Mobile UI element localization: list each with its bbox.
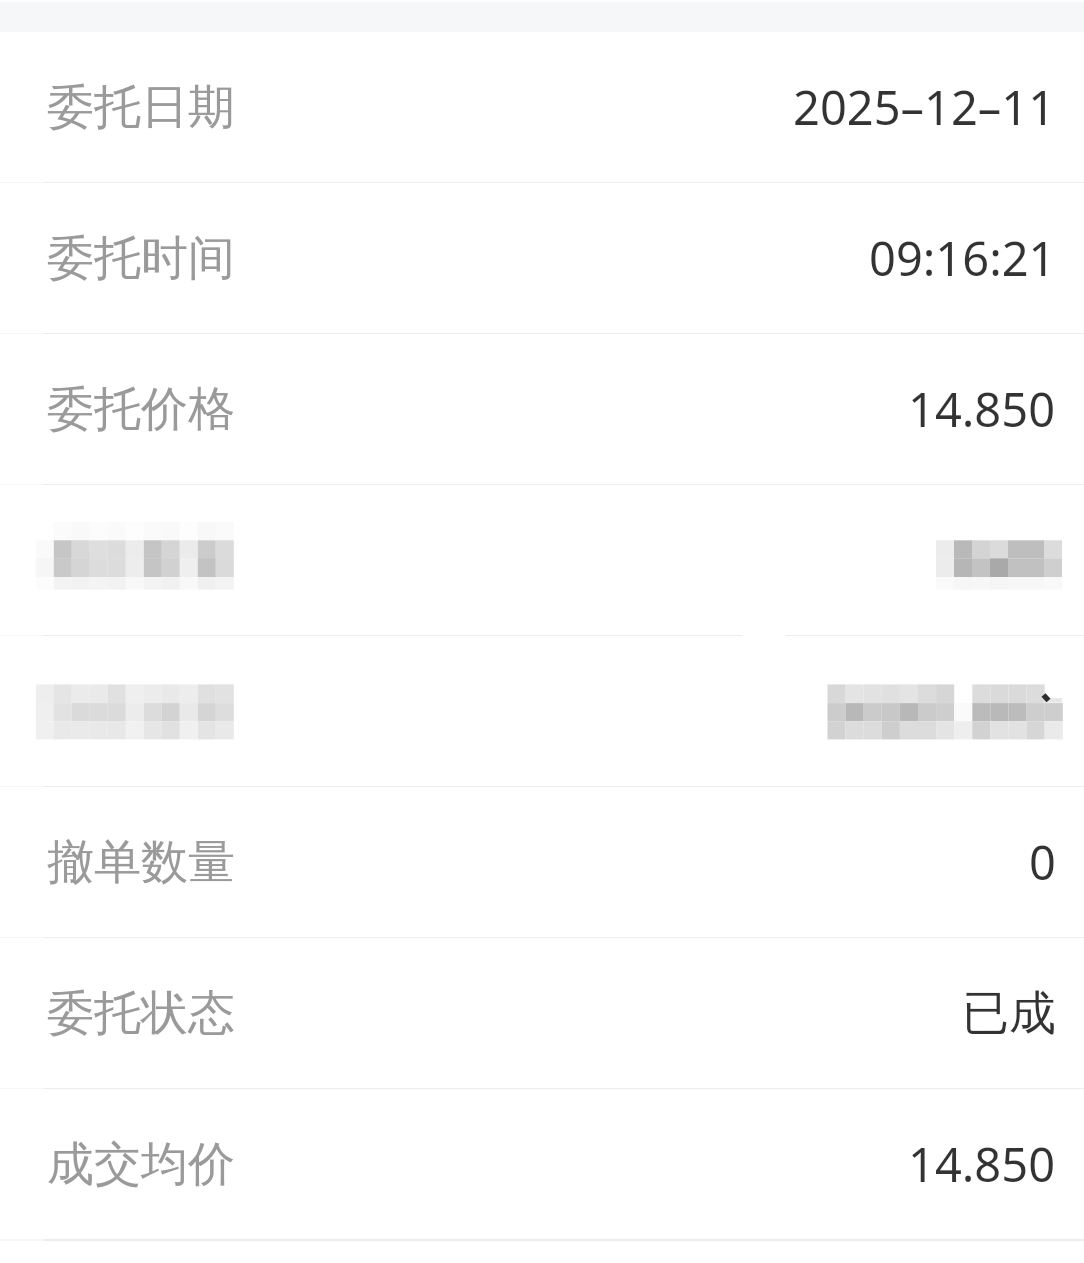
staticText: 委托价格	[47, 380, 235, 439]
button[interactable]: 委托价格	[0, 334, 1084, 485]
staticText: 已成	[962, 984, 1056, 1043]
staticText: 委托时间	[47, 229, 235, 288]
staticText: 成交均价	[47, 1135, 235, 1194]
staticText: 14.850	[908, 377, 1056, 441]
staticText: 委托状态	[47, 984, 235, 1043]
staticText: 09:16:21	[869, 226, 1056, 290]
staticText: 14.850	[908, 1132, 1056, 1196]
button[interactable]: 委托状态	[0, 938, 1084, 1089]
staticText: 2025–12–11	[793, 75, 1056, 139]
staticText: 委托日期	[47, 78, 235, 137]
button[interactable]: 撤单数量	[0, 787, 1084, 938]
button[interactable]: 委托时间	[0, 183, 1084, 334]
button[interactable]: Hidden detail	[0, 485, 1084, 636]
button[interactable]: Hidden detail	[0, 636, 1084, 787]
staticText: 撤单数量	[47, 833, 235, 892]
staticText: 0	[1029, 830, 1056, 894]
button[interactable]: 委托日期	[0, 32, 1084, 183]
button[interactable]: 成交均价	[0, 1089, 1084, 1240]
